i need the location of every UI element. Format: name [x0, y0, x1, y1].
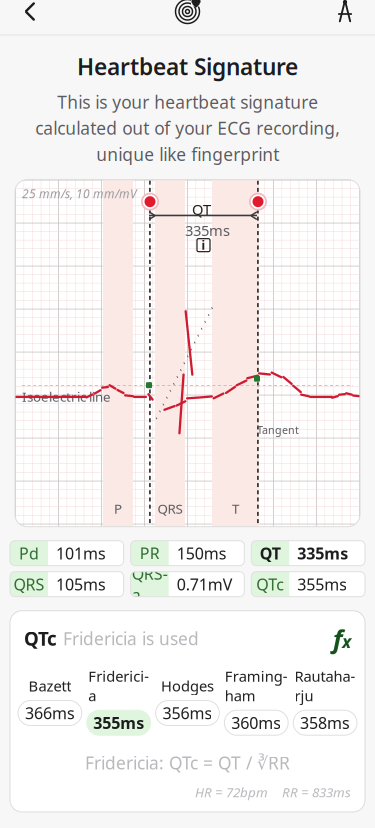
staticText: Tangent — [257, 423, 299, 437]
staticText: QT — [192, 200, 211, 219]
staticText: Rautaharju — [295, 666, 356, 705]
staticText: 335ms — [185, 221, 230, 240]
button[interactable]: Bazett — [18, 676, 82, 725]
staticText: 358ms — [300, 712, 350, 733]
staticText: QTc — [24, 626, 57, 651]
staticText: 355ms — [297, 573, 347, 595]
staticText: f — [333, 622, 342, 655]
staticText: QRS — [13, 573, 44, 595]
button[interactable]: Pd — [10, 541, 124, 566]
staticText: 355ms — [93, 712, 144, 733]
staticText: Framingham — [225, 666, 288, 705]
button[interactable]: QRS — [10, 572, 124, 597]
button[interactable]: Formula — [333, 622, 351, 655]
button[interactable]: QT — [251, 541, 365, 566]
button[interactable]: QRSa — [131, 572, 244, 597]
staticText: Fridericia — [88, 666, 149, 705]
staticText: 335ms — [297, 542, 348, 564]
staticText: 366ms — [25, 702, 75, 724]
staticText: QTc — [256, 573, 284, 595]
staticText: P — [114, 500, 122, 517]
staticText: QRSa — [132, 563, 168, 605]
staticText: QRS — [157, 500, 182, 517]
staticText: Bazett — [28, 676, 71, 695]
button[interactable]: Hodges — [156, 676, 219, 725]
staticText: 0.71mV — [177, 573, 233, 595]
staticText: QT — [260, 542, 281, 564]
button[interactable]: PR — [131, 541, 244, 566]
staticText: Isoelectric line — [22, 388, 111, 405]
staticText: This is your heartbeat signature calcula… — [35, 91, 340, 166]
staticText: RR = 833ms — [282, 783, 351, 801]
staticText: 25 mm/s, 10 mm/mV — [22, 186, 137, 202]
button[interactable]: Back — [4, 0, 56, 33]
staticText: Pd — [19, 542, 39, 564]
staticText: HR = 72bpm — [195, 783, 268, 801]
button[interactable]: Fridericia — [87, 666, 151, 735]
staticText: T — [232, 500, 239, 517]
staticText: 360ms — [231, 712, 281, 733]
staticText: i — [201, 237, 205, 253]
staticText: Fridericia: QTc = QT / ∛RR — [85, 751, 290, 774]
button[interactable]: Rautaharju — [293, 666, 357, 735]
staticText: Heartbeat Signature — [77, 51, 298, 82]
staticText: Hodges — [161, 676, 214, 695]
staticText: 105ms — [56, 573, 106, 595]
button[interactable]: Framingham — [224, 666, 288, 735]
staticText: Fridericia is used — [63, 627, 199, 650]
staticText: 150ms — [177, 542, 227, 564]
button[interactable]: QTc — [251, 572, 365, 597]
staticText: x — [342, 630, 351, 653]
staticText: 101ms — [56, 542, 106, 564]
button[interactable]: Calipers — [319, 0, 371, 33]
button[interactable]: Heartbeat signature — [161, 0, 213, 33]
staticText: PR — [140, 542, 160, 564]
staticText: 356ms — [162, 702, 212, 724]
